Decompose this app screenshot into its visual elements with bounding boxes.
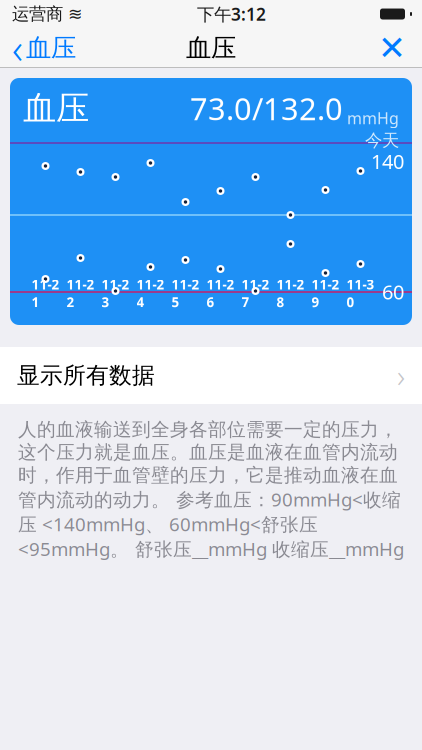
staticText: 11-22 <box>66 276 94 311</box>
staticText: ‹ <box>12 21 23 75</box>
staticText: › <box>397 355 405 396</box>
staticText: 11-29 <box>311 276 339 311</box>
staticText: 显示所有数据 <box>17 362 155 389</box>
staticText: 血压 <box>26 32 76 63</box>
staticText: 140 <box>371 148 404 175</box>
staticText: 11-24 <box>136 276 164 311</box>
staticText: 下午3:12 <box>197 2 266 25</box>
button[interactable]: 显示所有数据 <box>0 347 422 404</box>
staticText: 运营商 <box>12 3 63 25</box>
staticText: 11-26 <box>206 276 234 311</box>
staticText: 11-21 <box>31 276 59 311</box>
button[interactable]: ‹ <box>0 28 86 68</box>
staticText: 11-28 <box>276 276 304 311</box>
staticText: 今天 <box>365 130 399 151</box>
staticText: 血压 <box>186 32 236 63</box>
staticText: ✕ <box>378 29 406 67</box>
staticText: mmHg <box>347 107 399 129</box>
staticText: 人的血液输送到全身各部位需要一定的压力，这个压力就是血压。血压是血液在血管内流动… <box>18 418 404 561</box>
button[interactable]: 关闭 <box>362 28 422 68</box>
staticText: ≋ <box>68 4 83 24</box>
staticText: 11-27 <box>241 276 269 311</box>
staticText: 11-23 <box>101 276 129 311</box>
staticText: 60 <box>382 279 404 305</box>
staticText: 11-30 <box>346 276 374 311</box>
staticText: 11-25 <box>171 276 199 311</box>
staticText: 73.0/132.0 <box>190 88 343 129</box>
staticText: 血压 <box>23 88 89 129</box>
